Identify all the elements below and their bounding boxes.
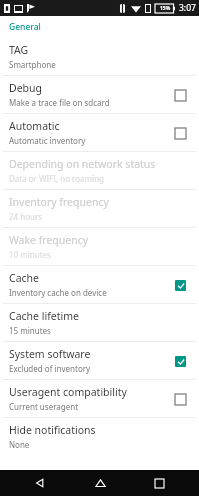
button[interactable]: Depending on network status [0,152,199,189]
button[interactable]: Toggle Cache [169,274,191,296]
button[interactable]: Useragent compatibility [0,380,199,417]
staticText: Useragent compatibility [9,385,127,399]
staticText: System software [9,347,91,361]
button[interactable]: Automatic [0,114,199,151]
staticText: 3:07 [179,2,196,14]
staticText: None [9,439,30,450]
button[interactable]: Home [80,470,120,496]
button[interactable]: Cache lifetime [0,304,199,341]
button[interactable]: System software [0,342,199,379]
staticText: Excluded of inventory [9,363,91,374]
staticText: Automatic inventory [9,135,86,146]
staticText: Make a trace file on sdcard [9,97,110,108]
button[interactable]: TAG [0,38,199,75]
button[interactable]: Debug [0,76,199,113]
staticText: TAG [9,43,29,57]
staticText: Inventory frequency [9,195,109,209]
button[interactable]: Wake frequency [0,228,199,265]
button[interactable]: Cache [0,266,199,303]
staticText: General [9,21,41,33]
staticText: Inventory cache on device [9,287,107,298]
staticText: Cache lifetime [9,309,79,323]
staticText: Depending on network status [9,157,156,171]
staticText: 15 minutes [9,325,51,336]
button[interactable]: Toggle System software [169,350,191,372]
button[interactable]: Inventory frequency [0,190,199,227]
staticText: Automatic [9,119,60,133]
button[interactable]: Recent apps [139,470,179,496]
staticText: Current useragent [9,401,79,412]
button[interactable]: Toggle Automatic [169,122,191,144]
staticText: 15% [160,5,171,12]
staticText: Smartphone [9,59,56,70]
button[interactable]: Toggle Useragent compatibility [169,388,191,410]
staticText: Data or WIFI, no roaming [9,173,104,184]
button[interactable]: Toggle Debug [169,84,191,106]
button[interactable]: Back [20,470,60,496]
staticText: Debug [9,81,42,95]
staticText: 10 minutes [9,249,51,260]
staticText: Hide notifications [9,423,96,437]
button[interactable]: Hide notifications [0,418,199,455]
staticText: 24 hours [9,211,43,222]
staticText: Wake frequency [9,233,89,247]
staticText: Cache [9,271,39,285]
